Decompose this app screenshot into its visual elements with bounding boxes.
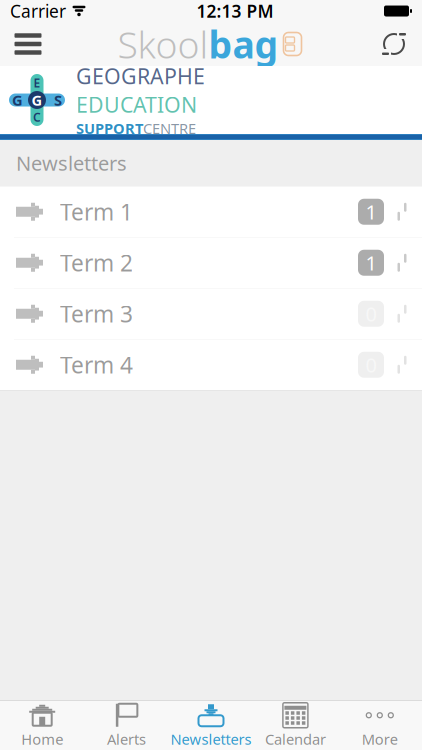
staticText: S bbox=[54, 90, 62, 110]
button[interactable]: Newsletters bbox=[169, 701, 253, 750]
button[interactable]: Term 2 bbox=[0, 237, 422, 288]
staticText: Term 3 bbox=[60, 299, 133, 329]
staticText: Term 4 bbox=[60, 350, 133, 380]
staticText: Alerts bbox=[107, 729, 146, 749]
staticText: 1 bbox=[365, 198, 376, 225]
staticText: Term 2 bbox=[60, 248, 133, 278]
staticText: 1 bbox=[365, 249, 376, 276]
staticText: More bbox=[362, 729, 398, 749]
staticText: G bbox=[31, 90, 42, 110]
button[interactable]: Home bbox=[0, 701, 84, 750]
staticText: 12:13 PM bbox=[196, 0, 273, 22]
staticText: Carrier bbox=[10, 0, 66, 22]
button[interactable]: Menu bbox=[0, 22, 56, 66]
staticText: G bbox=[12, 90, 23, 110]
staticText: Newsletters bbox=[170, 729, 251, 749]
staticText: C bbox=[33, 109, 41, 125]
staticText: Skool bbox=[117, 19, 208, 69]
staticText: Home bbox=[21, 729, 63, 749]
staticText: GEOGRAPHE bbox=[76, 62, 205, 90]
staticText: Calendar bbox=[265, 729, 326, 749]
staticText: bag bbox=[208, 19, 278, 69]
button[interactable]: Term 3 bbox=[0, 288, 422, 339]
button[interactable]: Term 1 bbox=[0, 186, 422, 237]
staticText: 0 bbox=[365, 300, 376, 327]
staticText: Newsletters bbox=[16, 150, 127, 176]
staticText: E bbox=[33, 75, 40, 91]
staticText: CENTRE bbox=[143, 119, 196, 138]
button[interactable]: Term 4 bbox=[0, 339, 422, 390]
button[interactable]: More bbox=[338, 701, 422, 750]
staticText: SUPPORT bbox=[76, 119, 143, 138]
staticText: Term 1 bbox=[60, 197, 133, 227]
button[interactable]: Refresh bbox=[366, 22, 422, 66]
staticText: EDUCATION bbox=[76, 90, 197, 119]
button[interactable]: Calendar bbox=[253, 701, 338, 750]
button[interactable]: Alerts bbox=[84, 701, 169, 750]
